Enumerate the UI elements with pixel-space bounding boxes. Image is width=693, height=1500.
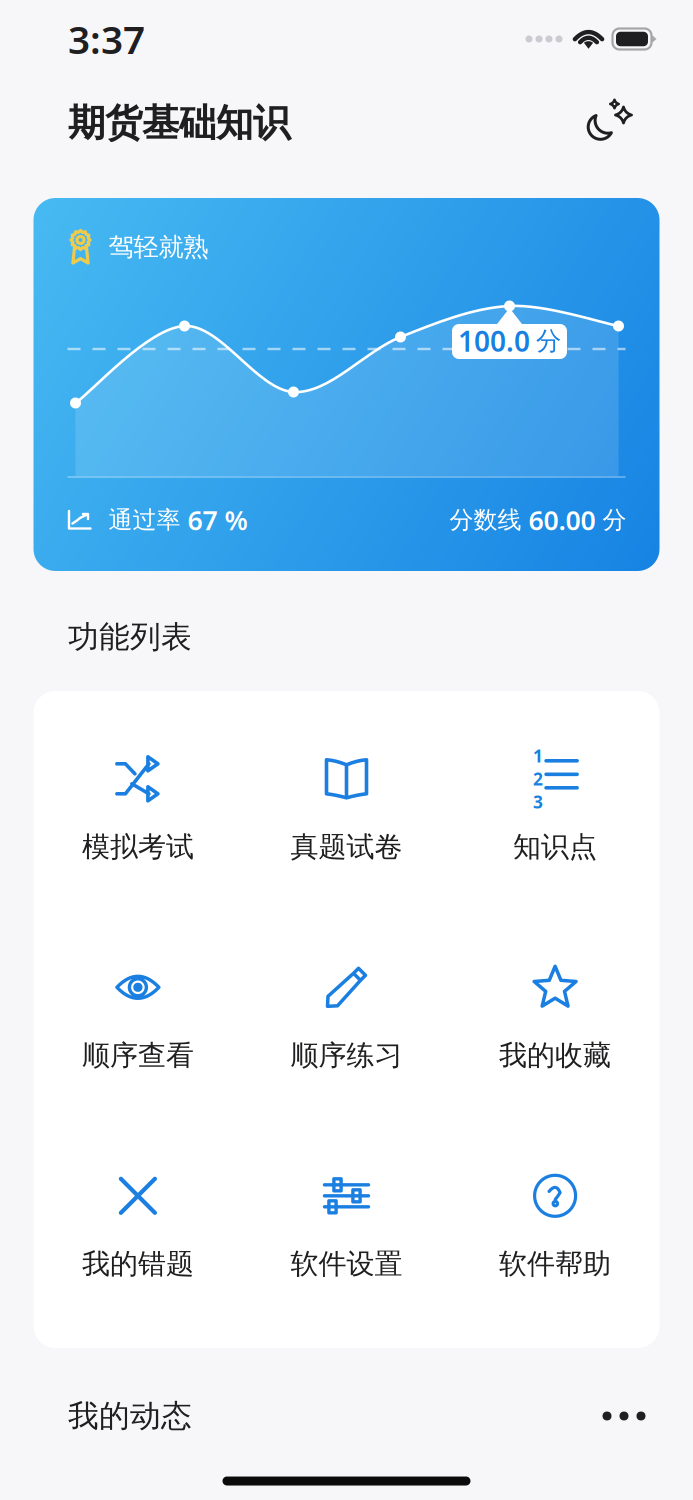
button[interactable]: 我的错题 <box>34 1155 242 1303</box>
staticText: 我的动态 <box>68 1397 192 1435</box>
staticText: 3 <box>533 790 543 813</box>
staticText: 软件帮助 <box>499 1247 611 1281</box>
staticText: 顺序查看 <box>82 1038 194 1073</box>
staticText: 真题试卷 <box>290 830 402 864</box>
staticText: 分 <box>536 325 561 356</box>
staticText: 分数线 <box>449 505 528 535</box>
staticText: 我的错题 <box>82 1247 194 1281</box>
staticText: 功能列表 <box>68 618 192 656</box>
button[interactable]: 模拟考试 <box>34 738 242 886</box>
staticText: 2 <box>533 767 543 790</box>
button[interactable]: 顺序查看 <box>34 946 242 1094</box>
staticText: 模拟考试 <box>82 830 194 864</box>
staticText: 我的收藏 <box>499 1038 611 1073</box>
button[interactable]: 顺序练习 <box>242 946 451 1094</box>
staticText: 分 <box>602 505 626 535</box>
staticText: 通过率 <box>108 505 187 535</box>
staticText: 知识点 <box>513 830 597 864</box>
staticText: 顺序练习 <box>290 1038 402 1073</box>
staticText: 60.00 <box>528 502 602 538</box>
staticText: 100.0 <box>458 322 530 360</box>
staticText: 软件设置 <box>290 1247 402 1281</box>
button[interactable]: More <box>586 1390 662 1442</box>
staticText: 驾轻就熟 <box>108 231 208 262</box>
button[interactable]: 我的收藏 <box>451 946 659 1094</box>
staticText: 期货基础知识 <box>68 100 290 146</box>
staticText: 3:37 <box>68 13 145 65</box>
button[interactable]: Dark mode <box>574 91 638 155</box>
button[interactable]: 软件设置 <box>242 1155 451 1303</box>
staticText: 67 % <box>187 502 247 538</box>
button[interactable]: 真题试卷 <box>242 738 451 886</box>
staticText: 1 <box>533 744 543 767</box>
button[interactable]: 1 <box>451 738 659 886</box>
button[interactable]: 软件帮助 <box>451 1155 659 1303</box>
